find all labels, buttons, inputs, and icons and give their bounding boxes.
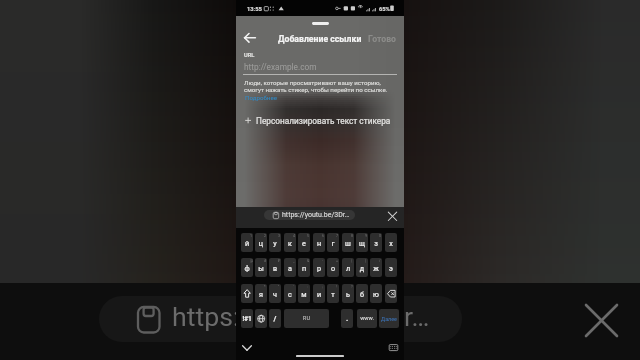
staticText: Готово	[368, 34, 397, 44]
button[interactable]: Скрыть клавиатуру	[240, 341, 254, 355]
staticText: е	[298, 239, 310, 252]
staticText: д	[356, 264, 368, 277]
button[interactable]: и	[313, 284, 325, 303]
button[interactable]: т	[327, 284, 339, 303]
staticText: 5	[307, 234, 310, 238]
button[interactable]: ц	[255, 233, 267, 252]
staticText: э	[385, 264, 397, 277]
staticText: 3	[278, 234, 281, 238]
staticText: а	[284, 264, 296, 277]
button[interactable]: к	[284, 233, 296, 252]
staticText: 8	[351, 234, 354, 238]
button[interactable]: Готово	[364, 31, 398, 45]
staticText: у	[269, 239, 281, 252]
staticText: Подробнее	[245, 94, 277, 101]
staticText: 7	[336, 234, 339, 238]
button[interactable]: б	[356, 284, 368, 303]
staticText: ф	[241, 264, 253, 277]
button[interactable]: ы	[255, 258, 267, 277]
button[interactable]: Назад	[242, 30, 258, 46]
button[interactable]: Выбор клавиатуры	[388, 342, 399, 353]
button[interactable]: р	[313, 258, 325, 277]
staticText: (	[351, 259, 353, 263]
button[interactable]: Закрыть	[384, 208, 401, 225]
button[interactable]: Далее	[379, 309, 399, 328]
staticText: ;	[322, 285, 323, 289]
staticText: о	[327, 264, 339, 277]
button[interactable]: а	[284, 258, 296, 277]
staticText: 4	[293, 234, 296, 238]
button[interactable]: н	[313, 233, 325, 252]
button[interactable]: в	[269, 258, 281, 277]
button[interactable]: /	[269, 309, 281, 328]
staticText: '	[293, 285, 294, 289]
staticText: RU	[284, 315, 329, 328]
button[interactable]: Закрыть подсказку	[586, 305, 617, 336]
button[interactable]: Shift	[241, 284, 253, 303]
button[interactable]: ш	[342, 233, 354, 252]
button[interactable]: Персонализировать текст стикера	[236, 111, 404, 130]
button[interactable]: ю	[370, 284, 382, 303]
staticText: /	[269, 314, 281, 328]
button[interactable]: ж	[370, 258, 382, 277]
staticText: смогут нажать стикер, чтобы перейти по с…	[244, 86, 388, 93]
staticText: +	[336, 259, 339, 263]
staticText: м	[298, 290, 310, 303]
button[interactable]: Сменить язык	[255, 309, 267, 328]
staticText: ю	[370, 290, 382, 303]
button[interactable]: з	[370, 233, 382, 252]
button[interactable]: щ	[356, 233, 368, 252]
button[interactable]: м	[298, 284, 310, 303]
staticText: й	[241, 239, 253, 252]
button[interactable]: х	[385, 233, 397, 252]
button[interactable]: э	[385, 258, 397, 277]
button[interactable]: п	[298, 258, 310, 277]
staticText: з	[370, 239, 382, 252]
staticText: 65%	[379, 6, 390, 13]
staticText: Далее	[379, 316, 399, 328]
button[interactable]: !#1	[241, 309, 253, 328]
staticText: Персонализировать текст стикера	[256, 116, 391, 126]
button[interactable]: ч	[269, 284, 281, 303]
button[interactable]: с	[284, 284, 296, 303]
staticText: т	[327, 290, 339, 303]
button[interactable]: й	[241, 233, 253, 252]
staticText: !	[336, 285, 337, 289]
button[interactable]: л	[342, 258, 354, 277]
button[interactable]: .	[341, 309, 353, 328]
staticText: -	[322, 259, 323, 263]
staticText: 0	[379, 234, 382, 238]
button[interactable]: RU	[284, 309, 329, 328]
button[interactable]: я	[255, 284, 267, 303]
staticText: http://example.com	[244, 62, 317, 72]
button[interactable]: ф	[241, 258, 253, 277]
staticText: 6	[322, 234, 325, 238]
staticText: Добавление ссылки	[278, 34, 362, 44]
staticText: 1	[250, 234, 253, 238]
button[interactable]: https://youtu.be/3Dr…	[264, 210, 355, 220]
button[interactable]: Подробнее	[244, 93, 290, 102]
button[interactable]: у	[269, 233, 281, 252]
staticText: г	[327, 239, 339, 252]
staticText: ?	[351, 285, 353, 289]
staticText: с	[284, 290, 296, 303]
button[interactable]: Удалить	[385, 284, 397, 303]
staticText: п	[298, 264, 310, 277]
button[interactable]: е	[298, 233, 310, 252]
staticText: ы	[255, 264, 267, 277]
button[interactable]: www.	[357, 309, 377, 328]
staticText: _	[293, 259, 295, 263]
staticText: .	[341, 314, 353, 328]
button[interactable]: о	[327, 258, 339, 277]
staticText: www.	[357, 315, 377, 328]
button[interactable]: г	[327, 233, 339, 252]
button[interactable]: https://youtu.be/3Dr	[99, 296, 462, 342]
staticText: ₽	[278, 259, 281, 263]
staticText: 13:55	[247, 6, 262, 13]
staticText: 9	[365, 234, 368, 238]
staticText: https://youtu.be/3Dr…	[172, 301, 430, 332]
button[interactable]: ь	[342, 284, 354, 303]
button[interactable]: д	[356, 258, 368, 277]
staticText: *	[264, 285, 266, 289]
staticText: ч	[269, 290, 281, 303]
